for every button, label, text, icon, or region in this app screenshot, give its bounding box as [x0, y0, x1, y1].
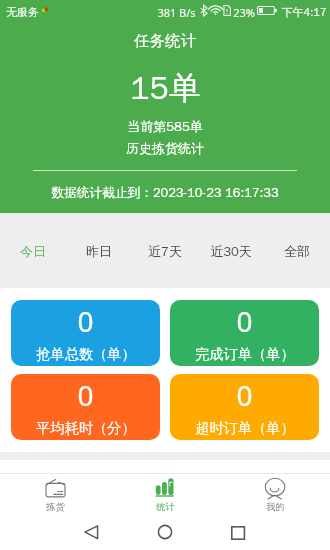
button[interactable]: 拣货: [0, 474, 110, 513]
staticText: 今日: [20, 243, 46, 259]
button[interactable]: 统计: [110, 474, 220, 513]
staticText: 完成订单（单）: [195, 345, 295, 363]
staticText: 0: [77, 302, 94, 340]
button[interactable]: 近7天: [132, 213, 198, 288]
staticText: 381 B/s: [157, 5, 196, 20]
staticText: 任务统计: [134, 31, 196, 51]
button[interactable]: 昨日: [66, 213, 132, 288]
staticText: 无服务: [6, 5, 39, 19]
button[interactable]: 0: [11, 300, 160, 366]
button[interactable]: 0: [170, 374, 319, 440]
staticText: 数据统计截止到：2023-10-23 16:17:33: [51, 185, 279, 201]
button[interactable]: Back: [84, 525, 98, 539]
other: 拣货: [45, 478, 66, 497]
staticText: 0: [77, 376, 94, 414]
button[interactable]: Home: [158, 525, 172, 539]
staticText: 15单: [130, 68, 201, 108]
staticText: 历史拣货统计: [126, 140, 204, 156]
staticText: 超时订单（单）: [195, 419, 295, 437]
staticText: 近7天: [148, 243, 182, 259]
staticText: 平均耗时（分）: [36, 419, 136, 437]
staticText: 全部: [284, 243, 310, 259]
button[interactable]: Recents: [231, 526, 245, 540]
button[interactable]: 0: [170, 300, 319, 366]
button[interactable]: 近30天: [198, 213, 264, 288]
button[interactable]: 全部: [264, 213, 330, 288]
staticText: 统计: [156, 501, 175, 513]
staticText: 抢单总数（单）: [36, 345, 136, 363]
staticText: 23%: [233, 5, 255, 20]
button[interactable]: 0: [11, 374, 160, 440]
staticText: 0: [236, 376, 253, 414]
staticText: 拣货: [46, 501, 65, 513]
other: 我的: [265, 478, 285, 499]
staticText: 昨日: [86, 243, 112, 259]
staticText: 近30天: [210, 243, 252, 259]
button[interactable]: 我的: [220, 474, 330, 513]
staticText: 下午4:17: [281, 5, 327, 19]
staticText: 当前第585单: [127, 118, 203, 134]
button[interactable]: 今日: [0, 213, 66, 288]
staticText: 0: [236, 302, 253, 340]
staticText: 我的: [266, 501, 285, 513]
other: 统计: [155, 478, 175, 497]
